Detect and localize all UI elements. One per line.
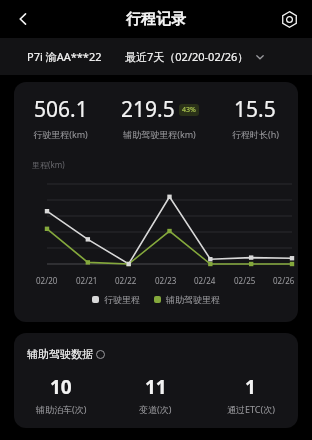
staticText: 行程时长(h): [232, 128, 279, 140]
staticText: 02/24: [194, 275, 216, 286]
staticText: 02/23: [155, 275, 177, 286]
staticText: 11: [145, 374, 167, 400]
button[interactable]: 219.5: [107, 95, 212, 140]
staticText: P7i 渝AA***22: [27, 49, 102, 64]
staticText: 变道(次): [139, 403, 172, 415]
staticText: 1: [245, 374, 256, 400]
staticText: 219.5: [121, 95, 175, 124]
staticText: 506.1: [34, 95, 88, 124]
button[interactable]: 10: [14, 374, 108, 415]
staticText: 15.5: [234, 95, 276, 124]
staticText: 10: [50, 374, 72, 400]
button[interactable]: 11: [108, 374, 203, 415]
button[interactable]: 辅助驾驶里程: [154, 294, 220, 305]
staticText: 02/21: [76, 275, 98, 286]
staticText: 通过ETC(次): [227, 403, 275, 415]
button[interactable]: Back: [8, 4, 38, 34]
staticText: 行驶里程(km): [33, 128, 88, 140]
staticText: 最近7天（02/20-02/26）: [125, 49, 249, 64]
button[interactable]: Settings: [275, 5, 303, 33]
staticText: 02/20: [36, 275, 58, 286]
button[interactable]: 辅助驾驶数据: [27, 347, 105, 361]
staticText: 行程记录: [126, 10, 186, 29]
staticText: 辅助泊车(次): [36, 403, 87, 415]
staticText: 辅助驾驶里程: [166, 294, 220, 305]
button[interactable]: 506.1: [14, 95, 107, 140]
staticText: 02/25: [234, 275, 256, 286]
button[interactable]: P7i 渝AA***22: [27, 49, 102, 64]
button[interactable]: 1: [203, 374, 298, 415]
staticText: 辅助驾驶数据: [27, 347, 93, 361]
button[interactable]: 15.5: [212, 95, 298, 140]
staticText: 02/22: [115, 275, 137, 286]
staticText: 行驶里程: [104, 294, 140, 305]
staticText: 02/26: [273, 275, 295, 286]
staticText: 辅助驾驶里程(km): [123, 128, 196, 140]
staticText: 43%: [182, 105, 196, 115]
button[interactable]: 行驶里程: [92, 294, 140, 305]
button[interactable]: 最近7天（02/20-02/26）: [125, 49, 265, 64]
staticText: 里程(km): [32, 159, 65, 170]
